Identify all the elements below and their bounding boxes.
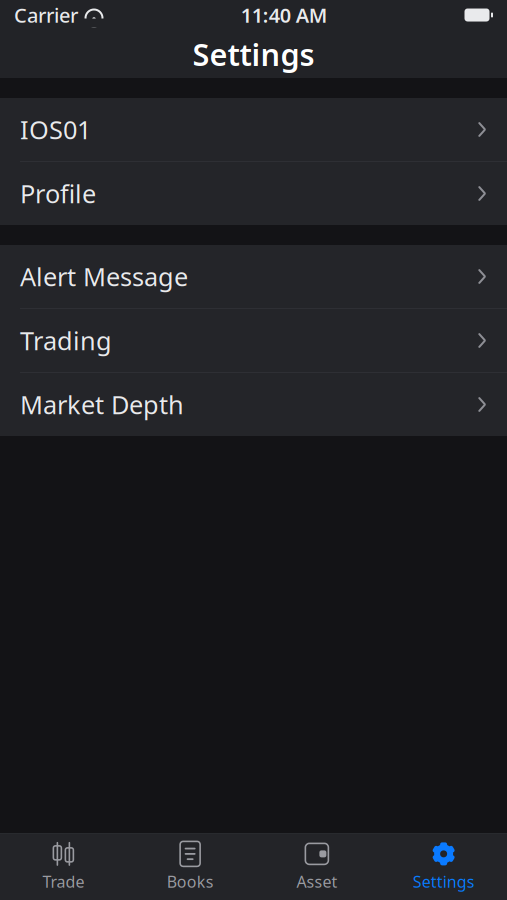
staticText: Carrier <box>14 2 78 28</box>
staticText: Alert Message <box>20 260 188 293</box>
staticText: Profile <box>20 177 96 210</box>
button[interactable]: Trading <box>0 309 507 372</box>
staticText: 11:40 AM <box>241 2 328 28</box>
staticText: Trading <box>20 324 112 357</box>
staticText: Books <box>167 871 214 892</box>
button[interactable]: Settings <box>380 833 507 900</box>
staticText: Trade <box>42 871 84 892</box>
staticText: Market Depth <box>20 388 184 421</box>
staticText: Asset <box>296 871 337 892</box>
button[interactable]: Market Depth <box>0 373 507 436</box>
button[interactable]: Asset <box>253 833 380 900</box>
staticText: IOS01 <box>20 113 91 146</box>
button[interactable]: Trade <box>0 833 127 900</box>
button[interactable]: Alert Message <box>0 245 507 308</box>
button[interactable]: Books <box>127 833 254 900</box>
button[interactable]: Profile <box>0 162 507 225</box>
staticText: Settings <box>192 34 314 74</box>
staticText: Settings <box>413 871 475 892</box>
button[interactable]: IOS01 <box>0 98 507 161</box>
